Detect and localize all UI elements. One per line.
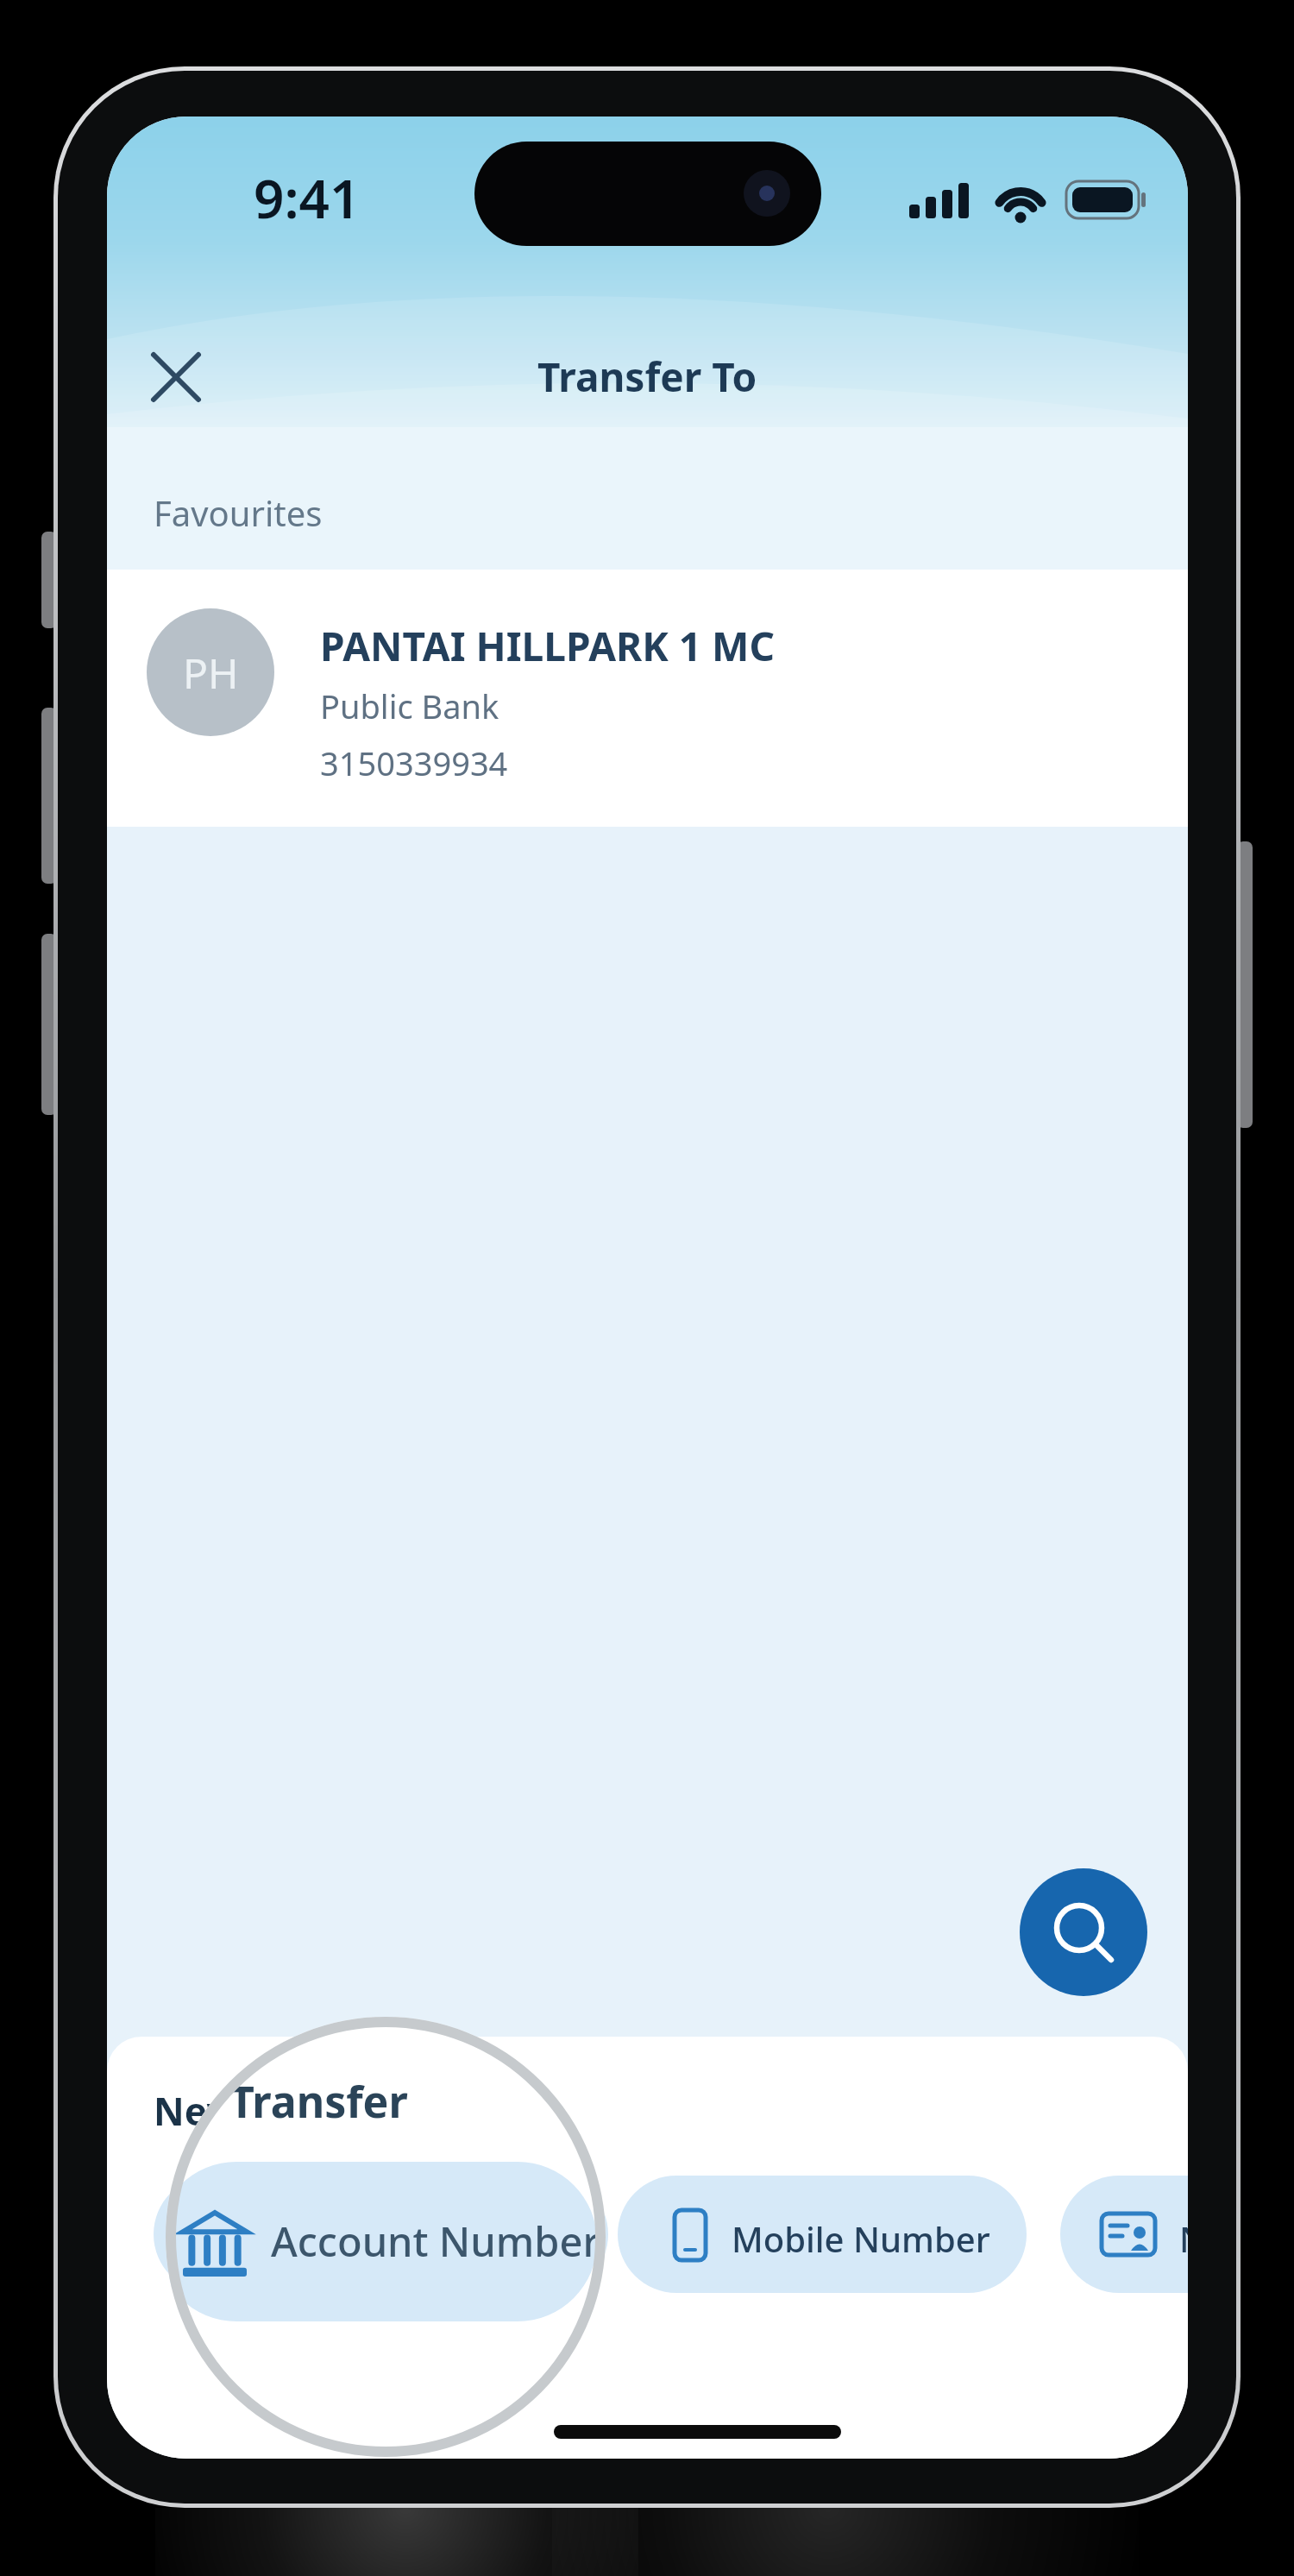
button[interactable]: Mobile Number (618, 2176, 1027, 2293)
staticText: Transfer To (537, 350, 757, 403)
button[interactable]: Account Number (154, 2176, 608, 2293)
staticText: New Transfer (154, 2085, 406, 2137)
staticText: Transfer (229, 2072, 408, 2131)
staticText: Public Bank (320, 683, 499, 728)
button[interactable] (1020, 1868, 1147, 1996)
staticText: Account Number (283, 2215, 563, 2262)
staticText: NRIC Number (1179, 2215, 1188, 2262)
staticText: Mobile Number (732, 2215, 990, 2262)
staticText: Favourites (154, 489, 323, 536)
staticText: PANTAI HILLPARK 1 MC (320, 619, 775, 673)
button[interactable]: PH (107, 570, 1188, 827)
staticText: 9:41 (254, 161, 361, 234)
staticText: Account Number (271, 2214, 600, 2269)
staticText: 3150339934 (320, 740, 508, 785)
button[interactable]: NRIC Number (1060, 2176, 1188, 2293)
staticText: PH (183, 645, 239, 701)
button[interactable] (124, 325, 228, 429)
